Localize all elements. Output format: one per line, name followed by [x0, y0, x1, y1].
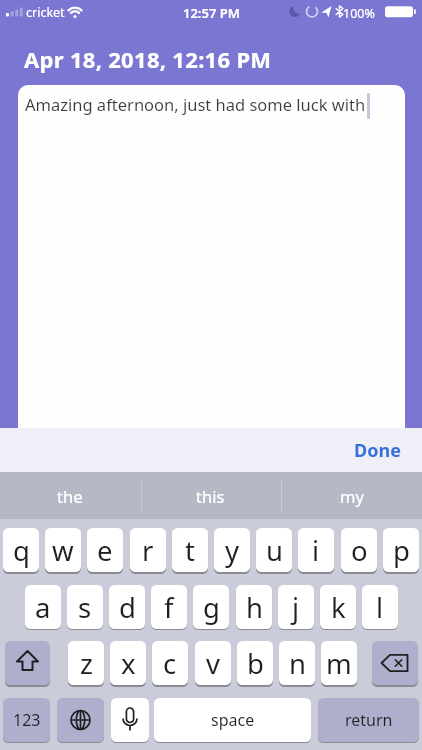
button[interactable]: m: [321, 641, 357, 685]
staticText: m: [326, 645, 352, 682]
staticText: l: [376, 589, 384, 626]
staticText: r: [142, 532, 154, 569]
button[interactable]: o: [341, 528, 377, 572]
button[interactable]: u: [256, 528, 292, 572]
button[interactable]: return: [318, 698, 419, 742]
staticText: this: [196, 485, 225, 507]
button[interactable]: space: [154, 698, 311, 742]
button[interactable]: v: [195, 641, 231, 685]
staticText: e: [97, 532, 113, 569]
staticText: i: [312, 532, 320, 569]
staticText: return: [345, 709, 393, 731]
staticText: 12:57 PM: [183, 4, 240, 22]
staticText: space: [211, 709, 255, 731]
button[interactable]: h: [236, 585, 272, 629]
button[interactable]: [111, 698, 149, 742]
staticText: t: [185, 532, 195, 569]
staticText: my: [340, 485, 364, 507]
staticText: Amazing afternoon, just had some luck wi…: [25, 93, 366, 115]
button[interactable]: a: [25, 585, 61, 629]
button[interactable]: k: [320, 585, 356, 629]
button[interactable]: the: [0, 472, 140, 519]
staticText: the: [57, 485, 83, 507]
button[interactable]: [5, 641, 50, 685]
staticText: v: [206, 645, 220, 682]
button[interactable]: j: [278, 585, 314, 629]
staticText: q: [13, 532, 30, 569]
button[interactable]: this: [140, 472, 281, 519]
staticText: x: [121, 645, 136, 682]
staticText: w: [52, 532, 74, 569]
button[interactable]: y: [214, 528, 250, 572]
button[interactable]: [372, 641, 418, 685]
staticText: d: [119, 589, 136, 626]
staticText: z: [80, 645, 93, 682]
button[interactable]: g: [193, 585, 229, 629]
staticText: s: [78, 589, 92, 626]
button[interactable]: my: [281, 472, 422, 519]
button[interactable]: [57, 698, 104, 742]
staticText: b: [247, 645, 264, 682]
button[interactable]: f: [151, 585, 187, 629]
button[interactable]: b: [237, 641, 273, 685]
button[interactable]: Amazing afternoon, just had some luck wi…: [18, 85, 405, 428]
staticText: f: [164, 589, 174, 626]
staticText: Apr 18, 2018, 12:16 PM: [24, 44, 272, 74]
button[interactable]: n: [279, 641, 315, 685]
button[interactable]: e: [87, 528, 123, 572]
staticText: p: [393, 532, 410, 569]
staticText: Done: [354, 438, 401, 463]
staticText: j: [292, 589, 300, 626]
button[interactable]: r: [130, 528, 166, 572]
button[interactable]: p: [383, 528, 419, 572]
staticText: o: [351, 532, 368, 569]
staticText: 100%: [343, 5, 375, 22]
button[interactable]: c: [152, 641, 188, 685]
staticText: a: [35, 589, 51, 626]
button[interactable]: s: [67, 585, 103, 629]
button[interactable]: l: [362, 585, 398, 629]
button[interactable]: x: [110, 641, 146, 685]
button[interactable]: Done: [332, 428, 422, 472]
button[interactable]: d: [109, 585, 145, 629]
button[interactable]: 123: [3, 698, 50, 742]
staticText: n: [289, 645, 306, 682]
staticText: u: [266, 532, 283, 569]
staticText: y: [225, 532, 240, 569]
button[interactable]: t: [172, 528, 208, 572]
staticText: cricket: [26, 4, 65, 21]
staticText: 123: [13, 709, 41, 731]
staticText: g: [203, 589, 220, 626]
button[interactable]: w: [45, 528, 81, 572]
button[interactable]: q: [3, 528, 39, 572]
staticText: c: [163, 645, 177, 682]
staticText: h: [246, 589, 263, 626]
button[interactable]: z: [68, 641, 104, 685]
staticText: k: [331, 589, 346, 626]
button[interactable]: i: [298, 528, 334, 572]
